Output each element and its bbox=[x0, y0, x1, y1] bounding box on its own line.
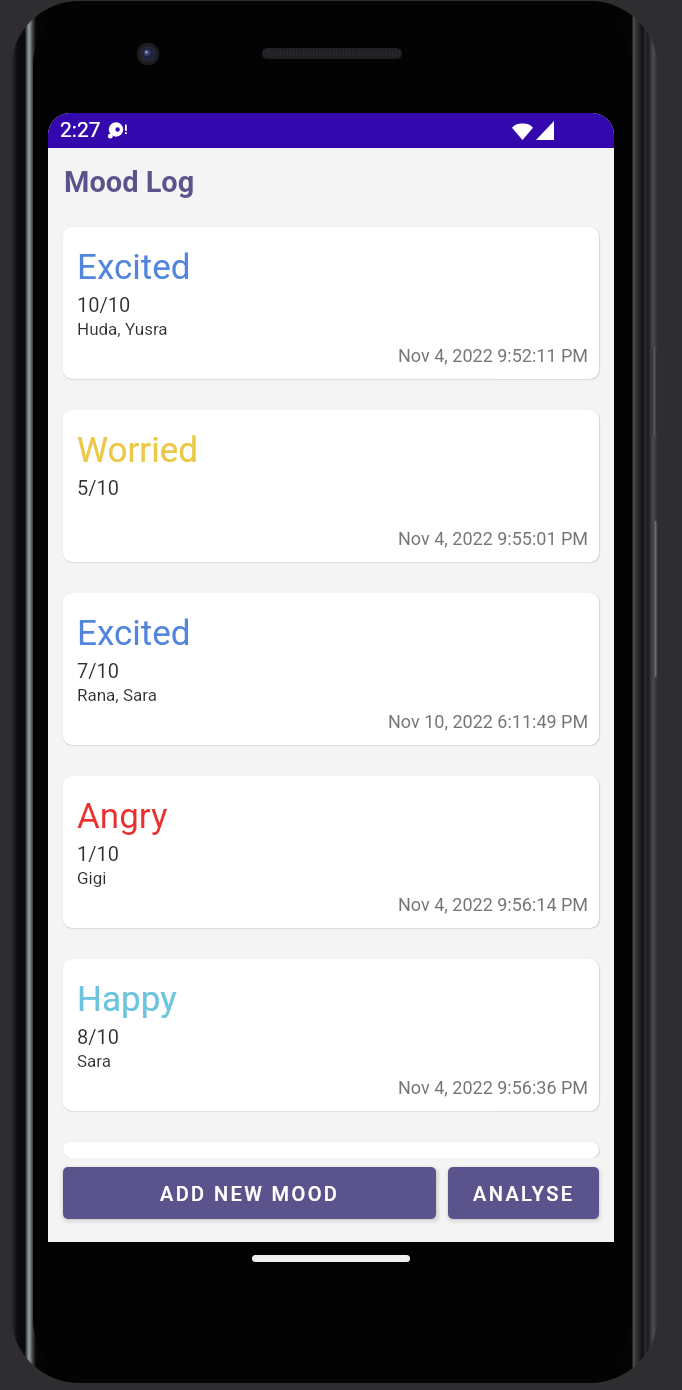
staticText: 1/10 bbox=[77, 842, 119, 865]
button[interactable]: Excited bbox=[63, 593, 599, 745]
staticText: 7/10 bbox=[77, 659, 119, 682]
staticText: Nov 4, 2022 9:56:14 PM bbox=[398, 894, 589, 915]
button[interactable]: ANALYSE bbox=[448, 1167, 599, 1219]
staticText: Nov 4, 2022 9:55:01 PM bbox=[398, 528, 589, 549]
staticText: Nov 4, 2022 9:56:36 PM bbox=[398, 1077, 589, 1098]
button[interactable]: Worried bbox=[63, 410, 599, 562]
staticText: Nov 4, 2022 9:52:11 PM bbox=[398, 345, 589, 366]
staticText: Gigi bbox=[77, 868, 107, 888]
button[interactable]: Angry bbox=[63, 776, 599, 928]
staticText: ANALYSE bbox=[473, 1182, 575, 1205]
staticText: Excited bbox=[77, 247, 191, 288]
staticText: Excited bbox=[77, 613, 191, 654]
staticText: Huda, Yusra bbox=[77, 319, 168, 339]
button[interactable]: ADD NEW MOOD bbox=[63, 1167, 436, 1219]
staticText: ADD NEW MOOD bbox=[160, 1182, 340, 1205]
button[interactable]: Happy bbox=[63, 959, 599, 1111]
staticText: 5/10 bbox=[77, 476, 119, 499]
staticText: 8/10 bbox=[77, 1025, 119, 1048]
staticText: Rana, Sara bbox=[77, 685, 157, 705]
staticText: Mood Log bbox=[64, 165, 195, 199]
staticText: Sara bbox=[77, 1051, 112, 1071]
staticText: 10/10 bbox=[77, 293, 131, 316]
staticText: Worried bbox=[77, 430, 199, 471]
staticText: Angry bbox=[77, 796, 168, 837]
staticText: Nov 10, 2022 6:11:49 PM bbox=[388, 711, 589, 732]
button[interactable]: Excited bbox=[63, 227, 599, 379]
staticText: 2:27 bbox=[60, 118, 101, 143]
staticText: Happy bbox=[77, 979, 177, 1020]
